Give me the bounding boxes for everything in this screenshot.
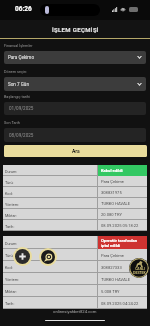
staticText: Durum: <box>5 169 18 173</box>
staticText: onlinesiyahbet824.com <box>53 309 97 314</box>
button[interactable]: Türü: <box>3 249 147 261</box>
button[interactable]: Durum: <box>3 236 147 249</box>
button[interactable]: 01/09/2025 <box>4 102 146 115</box>
staticText: 08.09.2025 04:24:22 <box>101 301 139 306</box>
staticText: Tarih: <box>5 301 15 305</box>
staticText: Son 7 Gün <box>8 82 29 87</box>
staticText: Son Tarih <box>4 120 20 124</box>
button[interactable]: Add <box>13 247 32 266</box>
button[interactable]: Para Çekimo <box>4 51 146 64</box>
staticText: TURBO HAVALE <box>101 277 131 282</box>
staticText: 06:26 <box>15 5 32 13</box>
staticText: 308831975 <box>101 190 122 195</box>
staticText: 5.008 TRY <box>101 289 120 294</box>
staticText: 01/09/2025 <box>9 106 34 111</box>
staticText: Para Çekimo <box>8 55 34 60</box>
staticText: Durum: <box>5 241 18 245</box>
staticText: Türü: <box>5 253 14 257</box>
staticText: CANLI <box>135 267 145 271</box>
staticText: 08.09.2025 05:18:22 <box>101 223 139 228</box>
button[interactable]: Kod: <box>3 187 147 198</box>
staticText: Miktar: <box>5 289 17 293</box>
staticText: 308827333 <box>101 265 122 270</box>
staticText: Finansal İşlemler <box>4 43 33 47</box>
button[interactable]: Ara <box>4 145 147 157</box>
staticText: Miktar: <box>5 213 17 217</box>
staticText: Kod: <box>5 265 13 269</box>
staticText: Para Çekime <box>101 179 125 184</box>
staticText: Para Çekime <box>101 253 125 258</box>
button[interactable]: Miktar: <box>3 209 147 220</box>
staticText: Ara <box>72 148 80 154</box>
button[interactable]: 08/09/2025 <box>4 128 146 142</box>
staticText: Dönem seçin: <box>4 69 27 73</box>
button[interactable]: Durum: <box>3 165 147 176</box>
staticText: TURBO HAVALE <box>101 201 131 206</box>
staticText: Kod: <box>5 191 13 195</box>
staticText: 20.080 TRY <box>101 212 122 217</box>
button[interactable]: Yöntem: <box>3 273 147 285</box>
button[interactable]: Son 7 Gün <box>4 77 146 91</box>
button[interactable]: Miktar: <box>3 285 147 297</box>
staticText: İŞLEM GEÇMİŞİ <box>52 26 99 33</box>
staticText: Tarih: <box>5 224 15 228</box>
staticText: Kabul edildi <box>101 168 123 173</box>
staticText: Yöntem: <box>5 277 19 281</box>
staticText: DESTEK <box>133 271 146 275</box>
button[interactable]: WhatsApp <box>39 248 57 266</box>
staticText: Türü: <box>5 180 14 184</box>
staticText: 08/09/2025 <box>9 133 34 138</box>
button[interactable]: Canlı Destek <box>129 258 149 278</box>
staticText: Operatör tarafından iptal edildi <box>101 238 137 248</box>
staticText: Başlangıç tarihi <box>4 94 31 98</box>
button[interactable]: Kod: <box>3 261 147 273</box>
button[interactable]: Türü: <box>3 176 147 187</box>
button[interactable]: Yöntem: <box>3 198 147 209</box>
button[interactable]: Tarih: <box>3 220 147 231</box>
button[interactable]: Tarih: <box>3 297 147 309</box>
staticText: Yöntem: <box>5 202 19 206</box>
